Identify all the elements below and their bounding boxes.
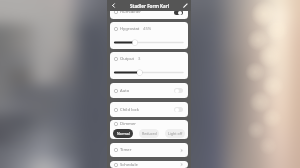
button[interactable]: Child lock [174,107,183,112]
staticText: Auto [120,88,130,94]
staticText: Humidifier [120,9,141,15]
button[interactable]: Humidifier [110,5,188,19]
staticText: Stadler Form Karl [130,3,169,9]
button[interactable]: Normal [113,129,133,138]
staticText: 45% [143,26,152,32]
button[interactable]: Edit [179,0,191,11]
button[interactable]: Auto [174,88,183,93]
button[interactable]: Dimmer [110,120,188,139]
button[interactable]: Light off [165,129,185,138]
button[interactable]: Output [110,52,188,79]
staticText: Timer [120,147,132,153]
button[interactable]: Hygrostat [110,22,188,49]
staticText: Dimmer [120,121,137,127]
button[interactable]: Auto [110,83,188,98]
staticText: Hygrostat [120,26,140,32]
button[interactable]: Back [107,0,119,11]
button[interactable]: Timer [110,143,188,157]
staticText: Normal [117,131,130,136]
button[interactable]: Child lock [110,102,188,117]
button[interactable]: Reduced [139,129,159,138]
button[interactable]: Schedule [110,161,188,168]
staticText: Output [120,56,135,62]
staticText: Schedule [120,162,138,168]
staticText: 3 [138,56,141,62]
staticText: Light off [168,131,183,136]
staticText: Reduced [142,131,157,136]
button[interactable]: Humidifier [174,10,183,15]
staticText: Child lock [120,107,139,113]
